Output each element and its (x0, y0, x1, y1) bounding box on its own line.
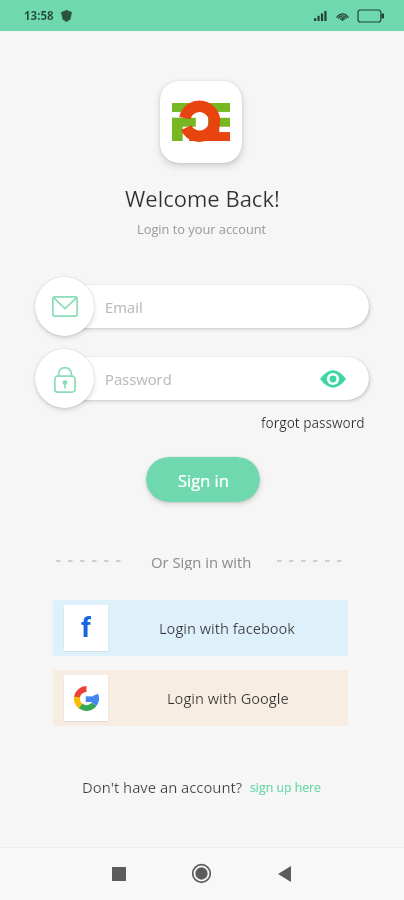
button[interactable]: Show password (318, 364, 348, 394)
staticText: Email (105, 297, 143, 317)
button[interactable]: Email (35, 277, 94, 336)
button[interactable]: forgot password (258, 410, 368, 435)
button[interactable]: sign up here (250, 779, 322, 796)
staticText: sign up here (250, 779, 322, 796)
staticText: Or Sign in with (151, 552, 252, 570)
staticText: Sign in (178, 469, 229, 491)
staticText: Welcome Back! (125, 183, 280, 213)
button[interactable]: Email (60, 285, 369, 328)
staticText: f (81, 611, 92, 644)
button[interactable]: Login with Google (53, 670, 348, 726)
button[interactable]: Password (60, 357, 369, 400)
button[interactable]: Sign in (146, 457, 260, 502)
staticText: forgot password (261, 413, 365, 432)
staticText: Login with facebook (159, 618, 296, 638)
staticText: Don't have an account? (82, 777, 243, 797)
staticText: 13:58 (24, 8, 54, 24)
button[interactable]: Home (179, 851, 224, 896)
button[interactable]: Password (35, 349, 94, 408)
staticText: Password (105, 369, 172, 389)
button[interactable]: f (53, 600, 348, 656)
staticText: Login with Google (167, 688, 289, 708)
button[interactable]: Back (262, 851, 307, 896)
staticText: Login to your account (137, 220, 267, 237)
button[interactable]: Recents (96, 851, 141, 896)
